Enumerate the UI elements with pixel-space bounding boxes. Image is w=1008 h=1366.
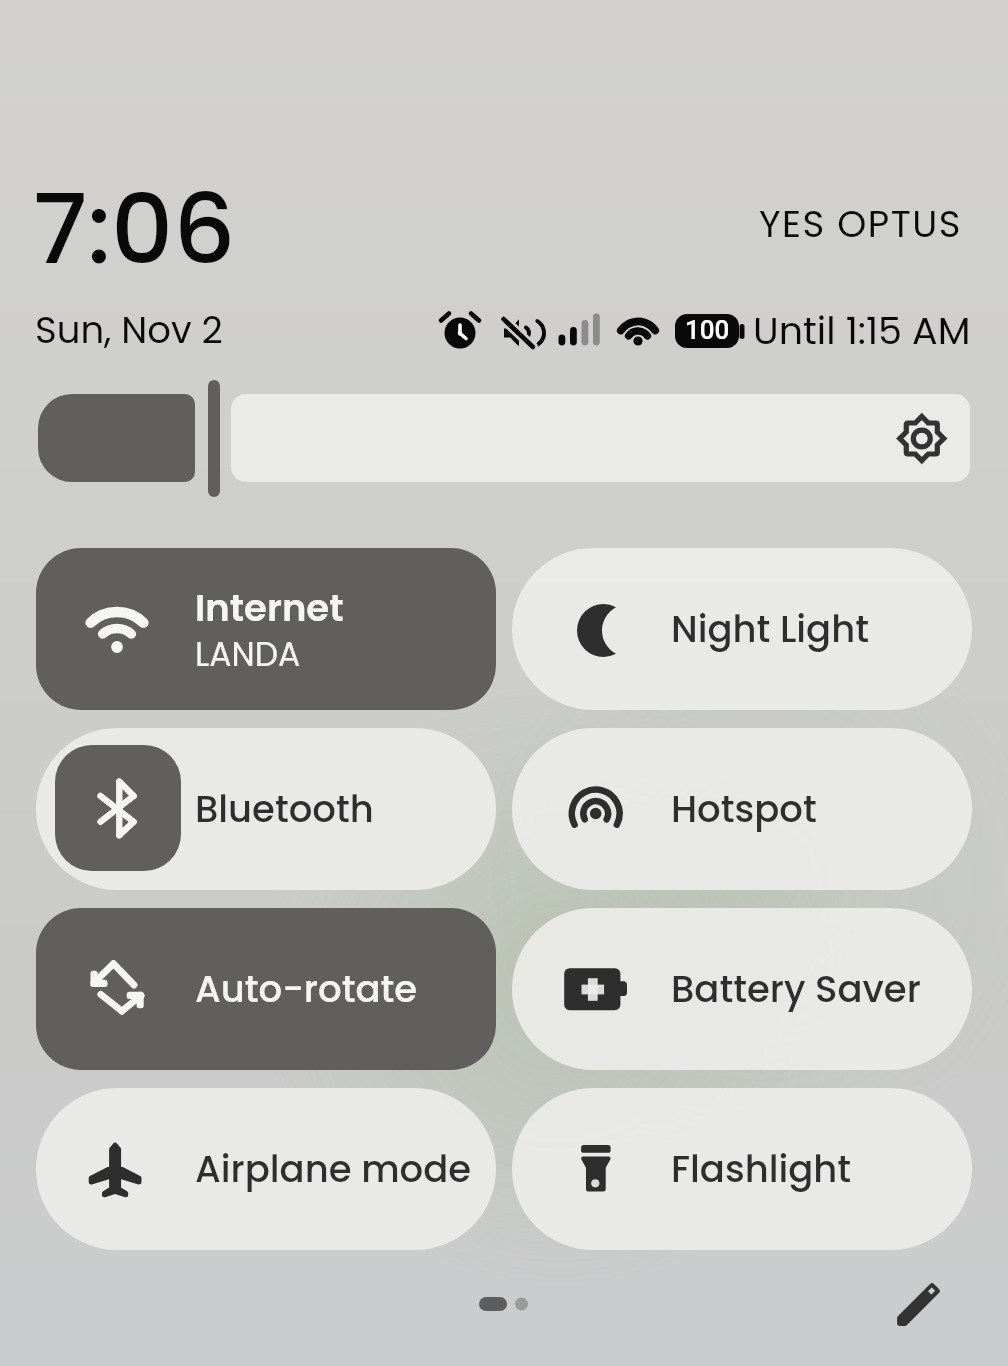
- staticText: 100: [685, 315, 730, 345]
- button[interactable]: Flashlight: [512, 1088, 972, 1250]
- button[interactable]: Bluetooth: [36, 728, 496, 890]
- button[interactable]: Internet: [36, 548, 496, 710]
- staticText: Battery Saver: [671, 963, 921, 1015]
- staticText: LANDA: [195, 631, 301, 677]
- button[interactable]: Hotspot: [512, 728, 972, 890]
- staticText: YES OPTUS: [759, 198, 962, 250]
- button[interactable]: Battery Saver: [512, 908, 972, 1070]
- button[interactable]: Brightness: [0, 378, 1008, 500]
- button[interactable]: Night Light: [512, 548, 972, 710]
- button[interactable]: Airplane mode: [36, 1088, 496, 1250]
- staticText: Bluetooth: [195, 783, 374, 835]
- staticText: Until 1:15 AM: [753, 304, 971, 357]
- staticText: Airplane mode: [195, 1143, 472, 1195]
- staticText: Auto-rotate: [195, 963, 418, 1015]
- staticText: Sun, Nov 2: [35, 304, 223, 356]
- button[interactable]: Auto-rotate: [36, 908, 496, 1070]
- staticText: Flashlight: [671, 1143, 852, 1195]
- staticText: 7:06: [33, 161, 236, 297]
- staticText: Hotspot: [671, 783, 817, 835]
- staticText: Night Light: [671, 603, 869, 655]
- button[interactable]: Edit quick settings: [878, 1263, 958, 1343]
- staticText: Internet: [195, 582, 344, 634]
